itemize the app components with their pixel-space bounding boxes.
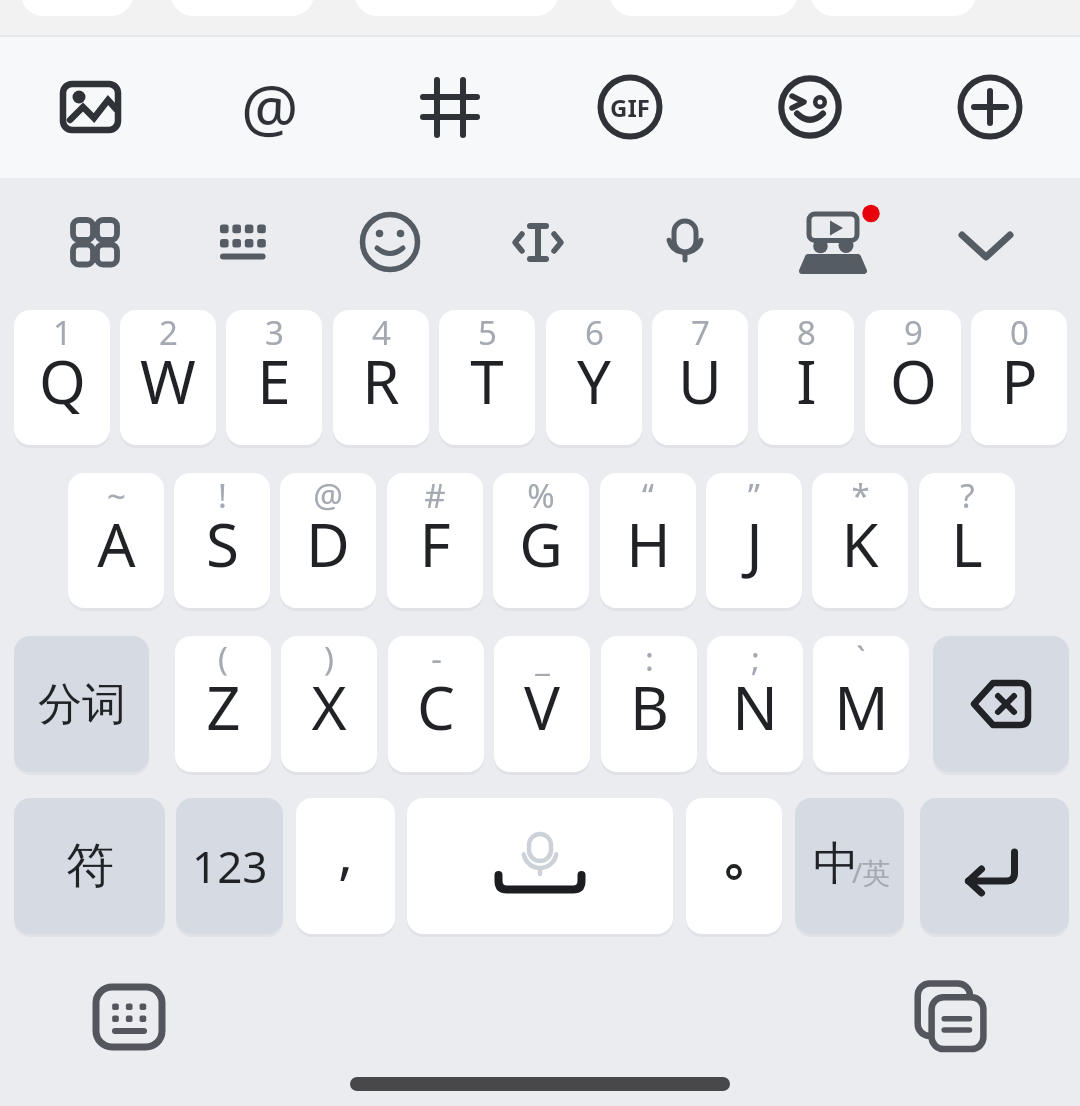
button[interactable]: [79, 967, 179, 1067]
button[interactable]: 3: [226, 310, 322, 445]
staticText: -: [431, 636, 442, 681]
button[interactable]: (: [175, 636, 271, 772]
staticText: 9: [904, 310, 923, 355]
button[interactable]: [900, 966, 1000, 1066]
staticText: W: [140, 340, 196, 422]
staticText: ~: [107, 473, 126, 518]
staticText: @: [313, 473, 343, 518]
button[interactable]: ~: [68, 473, 164, 608]
staticText: 5: [478, 310, 497, 355]
button[interactable]: @: [225, 62, 315, 152]
button[interactable]: 8: [758, 310, 854, 445]
staticText: E: [257, 340, 291, 422]
staticText: `: [856, 636, 866, 681]
staticText: U: [678, 340, 722, 422]
button[interactable]: @: [280, 473, 376, 608]
staticText: I: [796, 340, 817, 422]
button[interactable]: 中: [795, 798, 904, 934]
button[interactable]: [933, 636, 1069, 772]
staticText: Q: [39, 340, 86, 422]
staticText: 0: [1010, 310, 1029, 355]
button[interactable]: _: [494, 636, 590, 772]
staticText: “: [642, 473, 654, 518]
button[interactable]: 4: [333, 310, 429, 445]
button[interactable]: [407, 798, 673, 934]
button[interactable]: [405, 62, 495, 152]
staticText: B: [630, 666, 669, 748]
staticText: O: [890, 340, 937, 422]
staticText: ?: [960, 473, 975, 518]
button[interactable]: 7: [652, 310, 748, 445]
button[interactable]: :: [601, 636, 697, 772]
button[interactable]: `: [813, 636, 909, 772]
button[interactable]: -: [388, 636, 484, 772]
staticText: 8: [797, 310, 816, 355]
staticText: 4: [372, 310, 391, 355]
staticText: J: [746, 503, 763, 585]
staticText: R: [362, 340, 400, 422]
button[interactable]: [780, 187, 890, 297]
button[interactable]: %: [493, 473, 589, 608]
staticText: X: [311, 666, 347, 748]
button[interactable]: [198, 197, 288, 287]
button[interactable]: ): [281, 636, 377, 772]
button[interactable]: [945, 62, 1035, 152]
button[interactable]: 分词: [14, 636, 149, 772]
button[interactable]: [45, 62, 135, 152]
staticText: L: [951, 503, 983, 585]
button[interactable]: GIF: [585, 62, 675, 152]
staticText: (: [218, 636, 228, 681]
button[interactable]: [920, 798, 1069, 934]
button[interactable]: ,: [296, 798, 395, 934]
button[interactable]: [50, 197, 140, 287]
staticText: A: [97, 503, 136, 585]
button[interactable]: 0: [971, 310, 1067, 445]
staticText: 6: [585, 310, 604, 355]
button[interactable]: 1: [14, 310, 110, 445]
staticText: ,: [338, 814, 354, 890]
staticText: S: [206, 503, 239, 585]
button[interactable]: !: [174, 473, 270, 608]
staticText: P: [1001, 340, 1038, 422]
button[interactable]: *: [812, 473, 908, 608]
staticText: #: [424, 473, 446, 518]
button[interactable]: #: [387, 473, 483, 608]
staticText: 符: [66, 836, 114, 896]
staticText: @: [241, 64, 299, 151]
button[interactable]: 123: [176, 798, 283, 934]
staticText: 3: [265, 310, 284, 355]
button[interactable]: [686, 798, 782, 934]
staticText: H: [626, 503, 671, 585]
button[interactable]: ?: [919, 473, 1015, 608]
button[interactable]: [941, 197, 1031, 287]
button[interactable]: 9: [865, 310, 961, 445]
staticText: G: [519, 503, 563, 585]
button[interactable]: ”: [706, 473, 802, 608]
button[interactable]: [345, 197, 435, 287]
button[interactable]: “: [600, 473, 696, 608]
button[interactable]: ;: [707, 636, 803, 772]
staticText: F: [419, 503, 451, 585]
staticText: Y: [577, 340, 611, 422]
staticText: %: [527, 473, 555, 518]
button[interactable]: 符: [14, 798, 165, 934]
button[interactable]: [493, 197, 583, 287]
staticText: *: [851, 473, 870, 518]
button[interactable]: 5: [439, 310, 535, 445]
staticText: D: [306, 503, 350, 585]
staticText: :: [645, 636, 654, 681]
staticText: ;: [751, 636, 760, 681]
staticText: _: [535, 636, 550, 681]
staticText: 123: [192, 836, 268, 896]
button[interactable]: [765, 62, 855, 152]
button[interactable]: 6: [546, 310, 642, 445]
staticText: C: [417, 666, 455, 748]
button[interactable]: [640, 198, 730, 288]
staticText: 7: [691, 310, 710, 355]
staticText: T: [470, 340, 504, 422]
staticText: N: [732, 666, 778, 748]
staticText: 1: [53, 310, 72, 355]
button[interactable]: 2: [120, 310, 216, 445]
staticText: 中: [813, 835, 859, 893]
staticText: !: [218, 473, 227, 518]
